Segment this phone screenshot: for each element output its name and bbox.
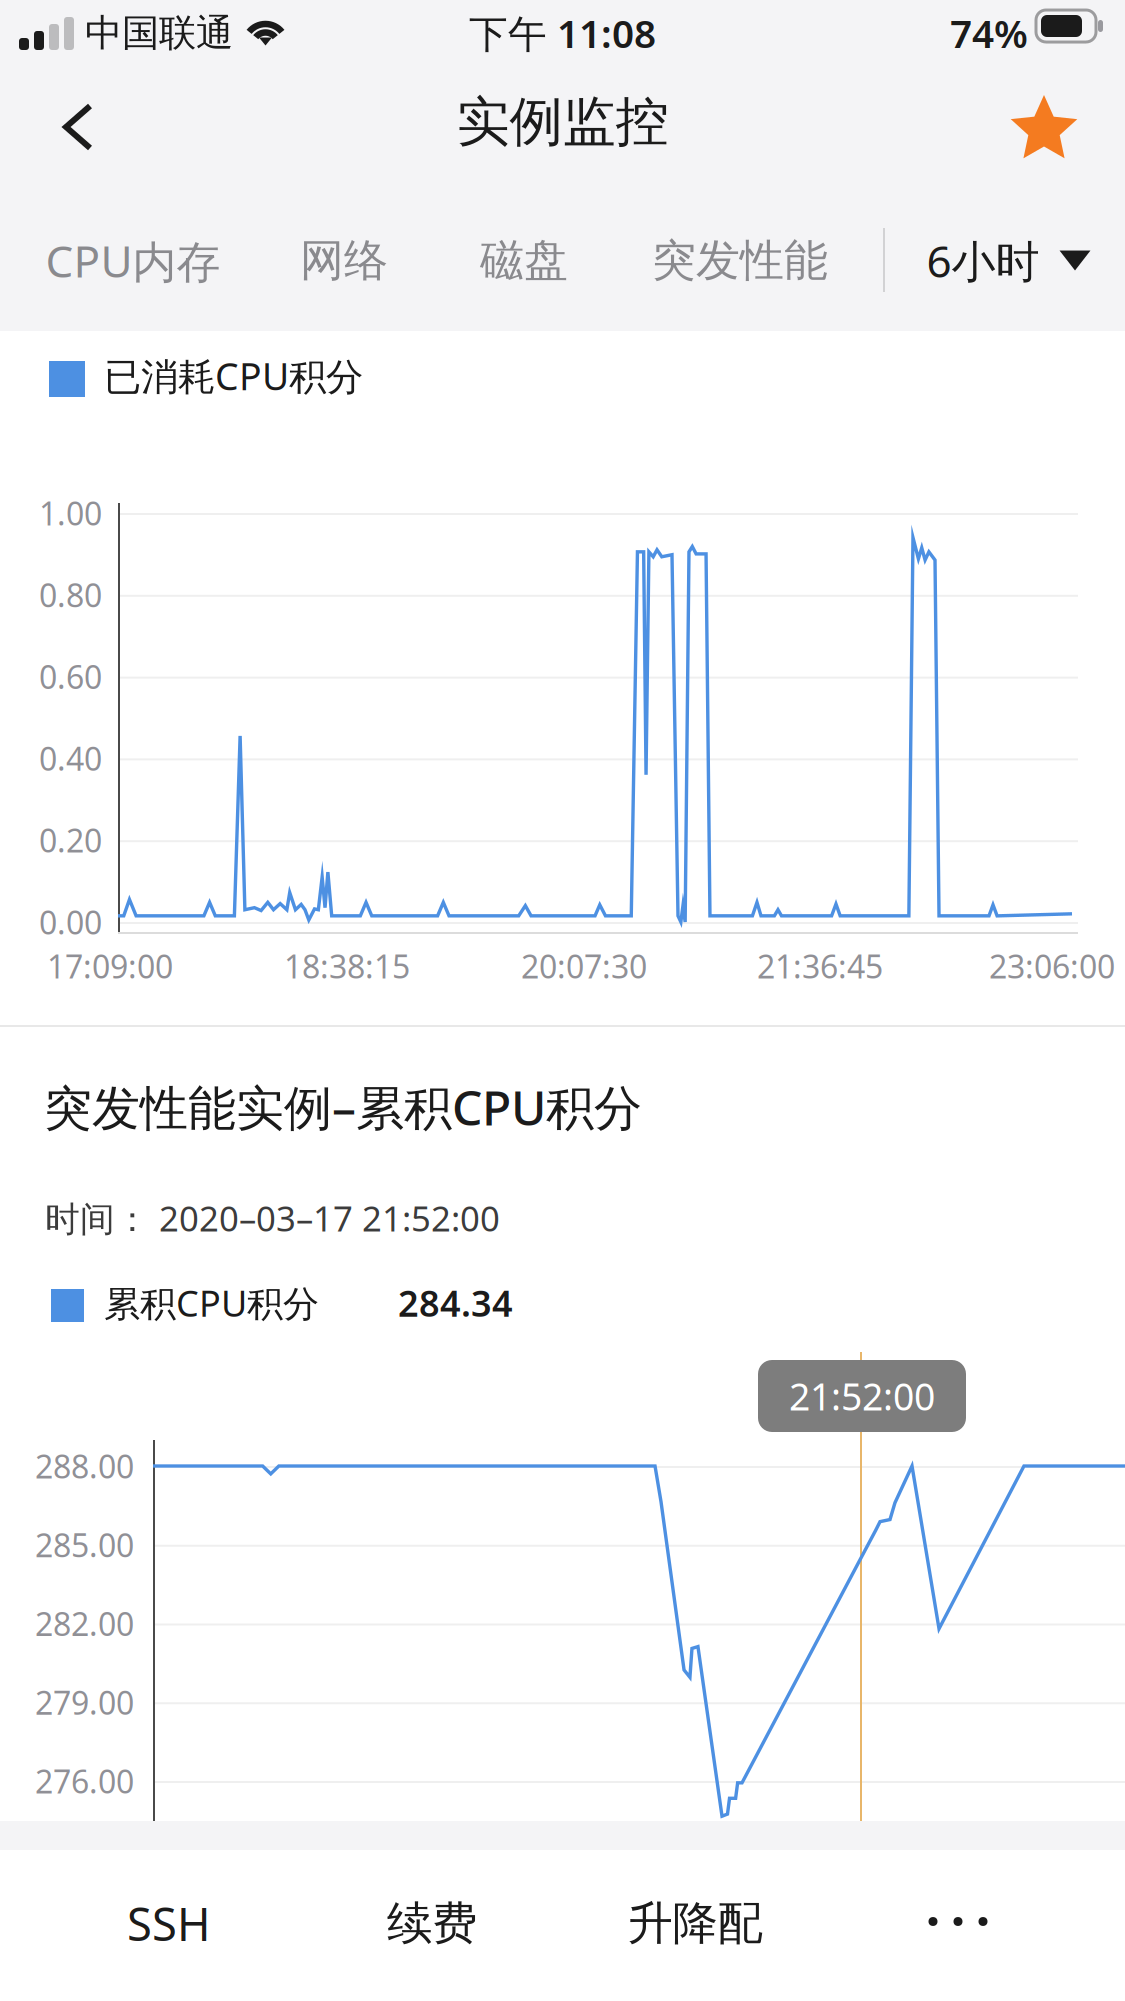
staticText: 0.20 [39,819,102,861]
staticText: 已消耗CPU积分 [104,351,363,401]
staticText: 285.00 [35,1523,134,1566]
staticText: 23:06:00 [989,945,1115,987]
staticText: CPU内存 [45,231,220,290]
staticText: 实例监控 [456,89,668,155]
staticText: 升降配 [627,1896,762,1951]
staticText: 中国联通 [85,10,233,56]
staticText: 1.00 [39,492,102,534]
staticText: 突发性能实例–累积CPU积分 [44,1075,642,1139]
staticText: 18:38:15 [284,945,410,987]
button[interactable]: 网络 [268,190,420,331]
staticText: 21:36:45 [757,945,883,987]
staticText: 284.34 [398,1279,513,1327]
button[interactable]: 磁盘 [448,190,600,331]
button[interactable]: 突发性能 [628,190,852,331]
staticText: 20:07:30 [521,945,647,987]
staticText: 下午 11:08 [469,7,656,59]
button[interactable]: CPU内存 [29,190,237,331]
staticText: 279.00 [35,1681,134,1723]
staticText: 21:52:00 [789,1371,935,1421]
staticText: SSH [127,1893,211,1954]
staticText: 时间： 2020–03–17 21:52:00 [45,1195,500,1241]
staticText: 276.00 [35,1760,134,1802]
staticText: 续费 [387,1896,477,1951]
button[interactable]: 6小时 [902,190,1115,331]
staticText: 网络 [300,233,388,287]
button[interactable]: SSH [38,1848,300,1999]
button[interactable]: 升降配 [564,1848,826,1999]
button[interactable]: 续费 [301,1848,563,1999]
staticText: 0.40 [39,737,102,780]
staticText: 0.80 [39,574,102,616]
staticText: 0.00 [39,901,102,943]
staticText: 0.60 [39,655,102,698]
staticText: 74% [950,7,1028,59]
staticText: 突发性能 [652,233,828,287]
staticText: 6小时 [926,231,1039,290]
staticText: 磁盘 [480,233,568,287]
staticText: 累积CPU积分 [104,1279,319,1327]
staticText: 17:09:00 [47,945,173,987]
button[interactable]: 返回 [18,78,138,190]
button[interactable]: 收藏 [984,78,1104,190]
staticText: 288.00 [35,1445,134,1487]
staticText: 282.00 [35,1602,134,1645]
button[interactable]: 更多 [827,1850,1089,2001]
